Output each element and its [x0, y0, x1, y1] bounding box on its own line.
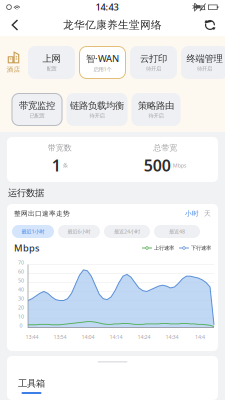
staticText: Mbps: [14, 242, 40, 254]
button[interactable]: 策略路由: [131, 93, 180, 126]
staticText: 带宽数: [48, 143, 72, 153]
staticText: 已配置: [29, 112, 44, 119]
staticText: 云打印: [140, 53, 167, 64]
button[interactable]: 链路负载均衡: [66, 93, 127, 126]
staticText: 天: [204, 209, 211, 218]
staticText: 上网: [42, 53, 60, 64]
staticText: 20: [18, 304, 24, 311]
staticText: 终端管理: [186, 53, 222, 64]
button[interactable]: 上网: [28, 46, 75, 79]
staticText: 带宽监控: [19, 100, 55, 111]
staticText: 10: [18, 313, 24, 320]
staticText: 50: [18, 277, 24, 284]
staticText: 13:44: [25, 333, 38, 341]
staticText: 14:4: [195, 333, 205, 341]
button[interactable]: 带宽监控: [11, 93, 62, 126]
staticText: 待开启: [197, 65, 212, 72]
button[interactable]: 小时: [185, 209, 199, 218]
button[interactable]: 最近6小时: [58, 225, 100, 238]
staticText: 龙华亿康养生堂网络: [63, 18, 162, 31]
staticText: 条: [63, 162, 68, 169]
staticText: 最近48: [169, 228, 185, 235]
staticText: 酒店: [6, 65, 20, 74]
staticText: 待开启: [146, 65, 161, 72]
staticText: 最近1小时: [21, 228, 44, 235]
button[interactable]: 智·WAN: [79, 46, 126, 79]
staticText: 14:34: [165, 333, 178, 341]
staticText: 策略路由: [138, 100, 174, 111]
button[interactable]: 最近48: [154, 225, 200, 238]
button[interactable]: 云打印: [130, 46, 177, 79]
staticText: 配置: [46, 65, 56, 72]
button[interactable]: 天: [199, 209, 211, 218]
staticText: 最近6小时: [67, 228, 90, 235]
staticText: 70: [18, 259, 24, 266]
staticText: 工具箱: [18, 377, 45, 389]
staticText: 上行速率: [154, 245, 174, 251]
staticText: 1: [52, 155, 61, 176]
staticText: 运行数据: [8, 187, 44, 199]
staticText: 整网出口速率走势: [14, 209, 70, 218]
button[interactable]: 最近1小时: [12, 225, 54, 238]
staticText: 40: [18, 286, 24, 293]
staticText: 下行速率: [191, 245, 211, 251]
staticText: 待开启: [89, 112, 104, 119]
staticText: Mbps: [173, 162, 187, 169]
staticText: 60: [18, 268, 24, 275]
staticText: 500: [144, 155, 171, 176]
staticText: 小时: [185, 209, 199, 218]
staticText: 0: [19, 322, 22, 329]
staticText: 总带宽: [153, 143, 177, 153]
staticText: 待开启: [148, 112, 163, 119]
staticText: 智·WAN: [86, 52, 119, 65]
staticText: 14:04: [81, 333, 94, 341]
staticText: 最近24小时: [114, 228, 140, 235]
button[interactable]: Refresh: [198, 14, 222, 36]
staticText: 14:43: [95, 1, 118, 13]
staticText: 14:14: [109, 333, 122, 341]
button[interactable]: 终端管理: [181, 46, 225, 79]
button[interactable]: Back: [3, 14, 27, 36]
button[interactable]: 最近24小时: [104, 225, 150, 238]
staticText: 启用1个: [93, 66, 111, 73]
staticText: 13:54: [53, 333, 66, 341]
staticText: 30: [18, 295, 24, 302]
button[interactable]: 工具箱: [18, 377, 45, 394]
staticText: 14:24: [137, 333, 150, 341]
staticText: 链路负载均衡: [70, 100, 124, 111]
button[interactable]: 酒店: [0, 41, 27, 84]
